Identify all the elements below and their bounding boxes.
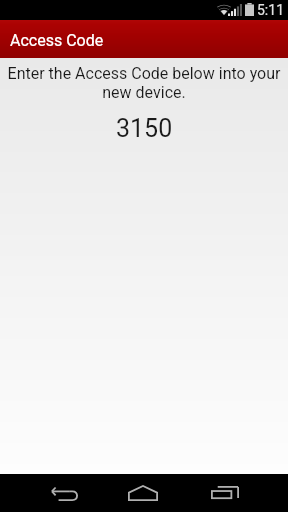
button[interactable]: Recent apps — [201, 474, 249, 512]
staticText: Enter the Access Code below into your ne… — [0, 64, 288, 102]
staticText: 5:11 — [257, 2, 284, 18]
staticText: Access Code — [10, 31, 104, 50]
staticText: 3150 — [116, 114, 173, 143]
button[interactable]: Home — [119, 474, 167, 512]
button[interactable]: Back — [40, 474, 88, 512]
